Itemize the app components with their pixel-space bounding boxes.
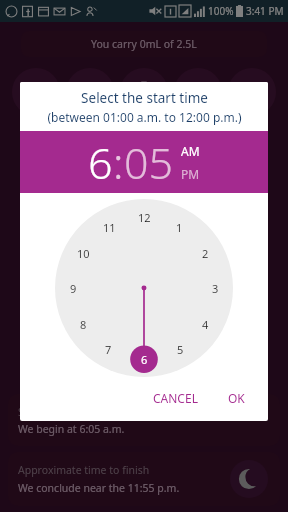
button[interactable]: You carry 0mL of 2.5L (21, 31, 267, 57)
staticText: OK (228, 390, 245, 406)
staticText: 11 (103, 220, 116, 235)
staticText: You carry 0mL of 2.5L (91, 37, 197, 51)
button[interactable]: Flask (174, 68, 222, 116)
button[interactable]: CANCEL (144, 385, 207, 411)
staticText: 5 (177, 342, 184, 357)
staticText: 100% (208, 4, 234, 18)
staticText: 12 (138, 210, 151, 225)
staticText: 3 (212, 281, 219, 296)
staticText: CANCEL (153, 390, 198, 406)
staticText: 6 (141, 352, 148, 367)
button[interactable]: Mug (66, 68, 114, 116)
staticText: : (113, 133, 124, 192)
staticText: Select the start time (81, 89, 208, 107)
button[interactable]: Approximate time to finish (8, 452, 280, 506)
button[interactable]: Night mode (230, 460, 268, 498)
button[interactable]: 05 (124, 133, 174, 192)
button[interactable]: PM (181, 166, 200, 182)
button[interactable]: OK (219, 385, 254, 411)
staticText: Approximate time to finish (18, 463, 150, 477)
staticText: We conclude near the 11:55 p.m. (18, 481, 180, 495)
staticText: Start (18, 405, 42, 419)
staticText: 4 (202, 317, 209, 332)
button[interactable]: Custom (228, 68, 276, 116)
staticText: 2 (202, 246, 209, 261)
staticText: 3:41 PM (246, 4, 284, 18)
staticText: We begin at 6:05 a.m. (18, 422, 125, 436)
button[interactable] (55, 199, 233, 377)
button[interactable]: Start (8, 394, 280, 446)
staticText: 10 (77, 246, 90, 261)
button[interactable]: Glass (12, 68, 60, 116)
button[interactable]: Bottle (120, 68, 168, 116)
button[interactable]: 6 (88, 133, 113, 192)
staticText: 9 (70, 281, 77, 296)
staticText: 7 (105, 342, 112, 357)
staticText: (between 01:00 a.m. to 12:00 p.m.) (47, 109, 242, 125)
button[interactable]: AM (181, 143, 200, 159)
staticText: 8 (80, 317, 87, 332)
staticText: 1 (176, 220, 183, 235)
